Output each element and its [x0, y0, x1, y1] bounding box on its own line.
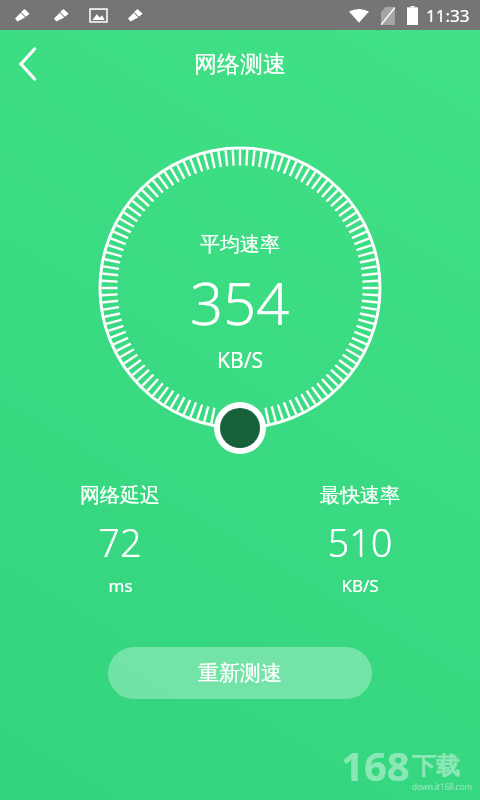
- staticText: 下载: [412, 751, 460, 781]
- staticText: KB/S: [341, 574, 379, 597]
- staticText: down.it168.com: [412, 781, 472, 792]
- staticText: 网络延迟: [80, 483, 160, 508]
- staticText: 11:33: [426, 4, 470, 27]
- staticText: 最快速率: [320, 483, 400, 508]
- staticText: ms: [108, 574, 133, 597]
- staticText: 354: [190, 263, 290, 342]
- staticText: 网络测速: [194, 50, 286, 79]
- button[interactable]: Back: [0, 36, 56, 92]
- button[interactable]: 重新测速: [108, 647, 372, 699]
- staticText: 168: [341, 738, 410, 792]
- staticText: 平均速率: [200, 232, 280, 257]
- staticText: 重新测速: [198, 660, 282, 686]
- staticText: 510: [327, 516, 393, 568]
- staticText: KB/S: [217, 346, 263, 375]
- staticText: 72: [98, 516, 142, 568]
